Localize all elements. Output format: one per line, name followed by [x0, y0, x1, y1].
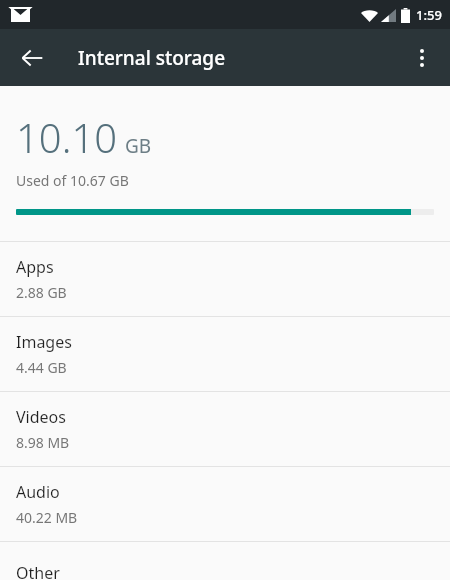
staticText: GB: [125, 133, 152, 159]
staticText: 10.10: [16, 110, 118, 164]
staticText: Videos: [16, 406, 66, 428]
staticText: 2.88 GB: [16, 283, 67, 302]
button[interactable]: Videos: [0, 392, 450, 466]
button[interactable]: Audio: [0, 467, 450, 541]
staticText: Images: [16, 331, 72, 353]
staticText: 8.98 MB: [16, 433, 70, 452]
staticText: Used of 10.67 GB: [16, 171, 129, 190]
staticText: Audio: [16, 481, 60, 503]
staticText: Apps: [16, 256, 54, 278]
button[interactable]: Navigate up: [8, 34, 56, 82]
staticText: 4.44 GB: [16, 358, 67, 377]
button[interactable]: Apps: [0, 242, 450, 316]
staticText: Other: [16, 562, 60, 580]
button[interactable]: More options: [398, 34, 446, 82]
staticText: Internal storage: [78, 45, 226, 71]
staticText: 40.22 MB: [16, 508, 78, 527]
button[interactable]: Images: [0, 317, 450, 391]
staticText: 1:59: [416, 6, 442, 24]
button[interactable]: Other: [0, 542, 450, 580]
